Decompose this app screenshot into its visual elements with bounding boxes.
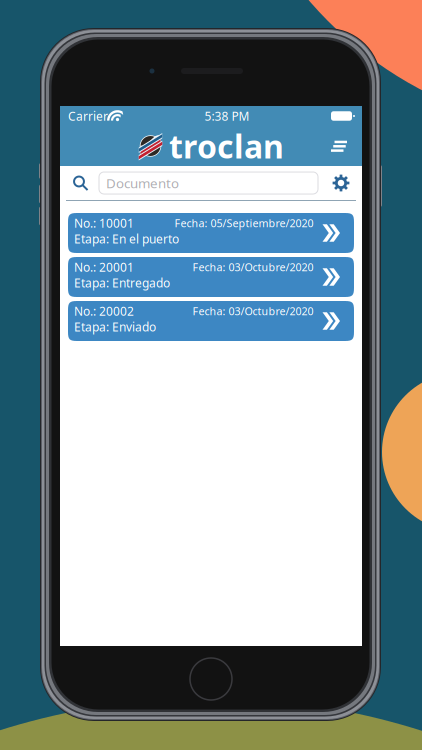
staticText: Fecha: 03/Octubre/2020	[192, 260, 313, 274]
staticText: No.: 10001	[74, 215, 134, 231]
button[interactable]: No.: 20002	[68, 301, 354, 341]
staticText: Documento	[106, 174, 179, 192]
staticText: Etapa: En el puerto	[74, 231, 179, 247]
button[interactable]: Settings	[330, 172, 352, 194]
button[interactable]: No.: 10001	[68, 213, 354, 253]
button[interactable]: Menu	[324, 131, 354, 161]
button[interactable]: No.: 20001	[68, 257, 354, 297]
staticText: No.: 20002	[74, 303, 134, 319]
staticText: troclan	[169, 125, 284, 167]
staticText: 5:38 PM	[204, 108, 249, 124]
staticText: Carrier	[68, 108, 108, 124]
staticText: Etapa: Enviado	[74, 319, 156, 335]
staticText: Etapa: Entregado	[74, 275, 170, 291]
staticText: Fecha: 03/Octubre/2020	[192, 304, 313, 318]
staticText: Fecha: 05/Septiembre/2020	[174, 216, 313, 230]
staticText: No.: 20001	[74, 259, 134, 275]
